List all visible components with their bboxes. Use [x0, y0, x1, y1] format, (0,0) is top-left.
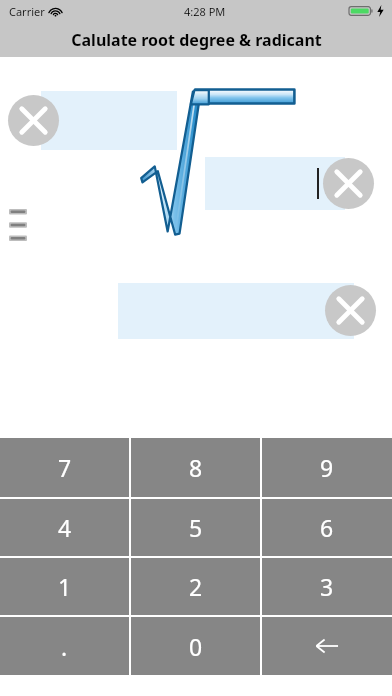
staticText: 8	[189, 452, 203, 483]
staticText: 3	[320, 571, 334, 602]
button[interactable]: 8	[131, 438, 260, 497]
staticText: 5	[189, 512, 203, 543]
button[interactable]	[205, 157, 345, 210]
button[interactable]: Menu	[4, 203, 32, 247]
button[interactable]: .	[0, 617, 129, 675]
button[interactable]: 5	[131, 499, 260, 556]
button[interactable]: 4	[0, 499, 129, 556]
button[interactable]: 0	[131, 617, 260, 675]
staticText: 4:28 PM	[184, 4, 226, 19]
button[interactable]: Clear root degree	[8, 95, 59, 146]
button[interactable]: 2	[131, 558, 260, 615]
button[interactable]	[118, 283, 354, 339]
staticText: .	[61, 631, 68, 662]
staticText: 0	[189, 631, 203, 662]
staticText: Calulate root degree & radicant	[71, 29, 322, 51]
staticText: 4	[58, 512, 72, 543]
button[interactable]: 3	[262, 558, 392, 615]
staticText: 6	[320, 512, 334, 543]
button[interactable]: Clear result	[325, 285, 376, 336]
button[interactable]: 9	[262, 438, 392, 497]
staticText: Carrier	[9, 4, 45, 19]
staticText: 1	[58, 571, 72, 602]
button[interactable]: Clear radicand	[323, 158, 374, 209]
button[interactable]: Backspace	[262, 617, 392, 675]
staticText: 2	[189, 571, 203, 602]
staticText: 7	[58, 452, 72, 483]
button[interactable]: 7	[0, 438, 129, 497]
button[interactable]	[41, 91, 177, 150]
staticText: 9	[320, 452, 334, 483]
button[interactable]: 6	[262, 499, 392, 556]
button[interactable]: 1	[0, 558, 129, 615]
